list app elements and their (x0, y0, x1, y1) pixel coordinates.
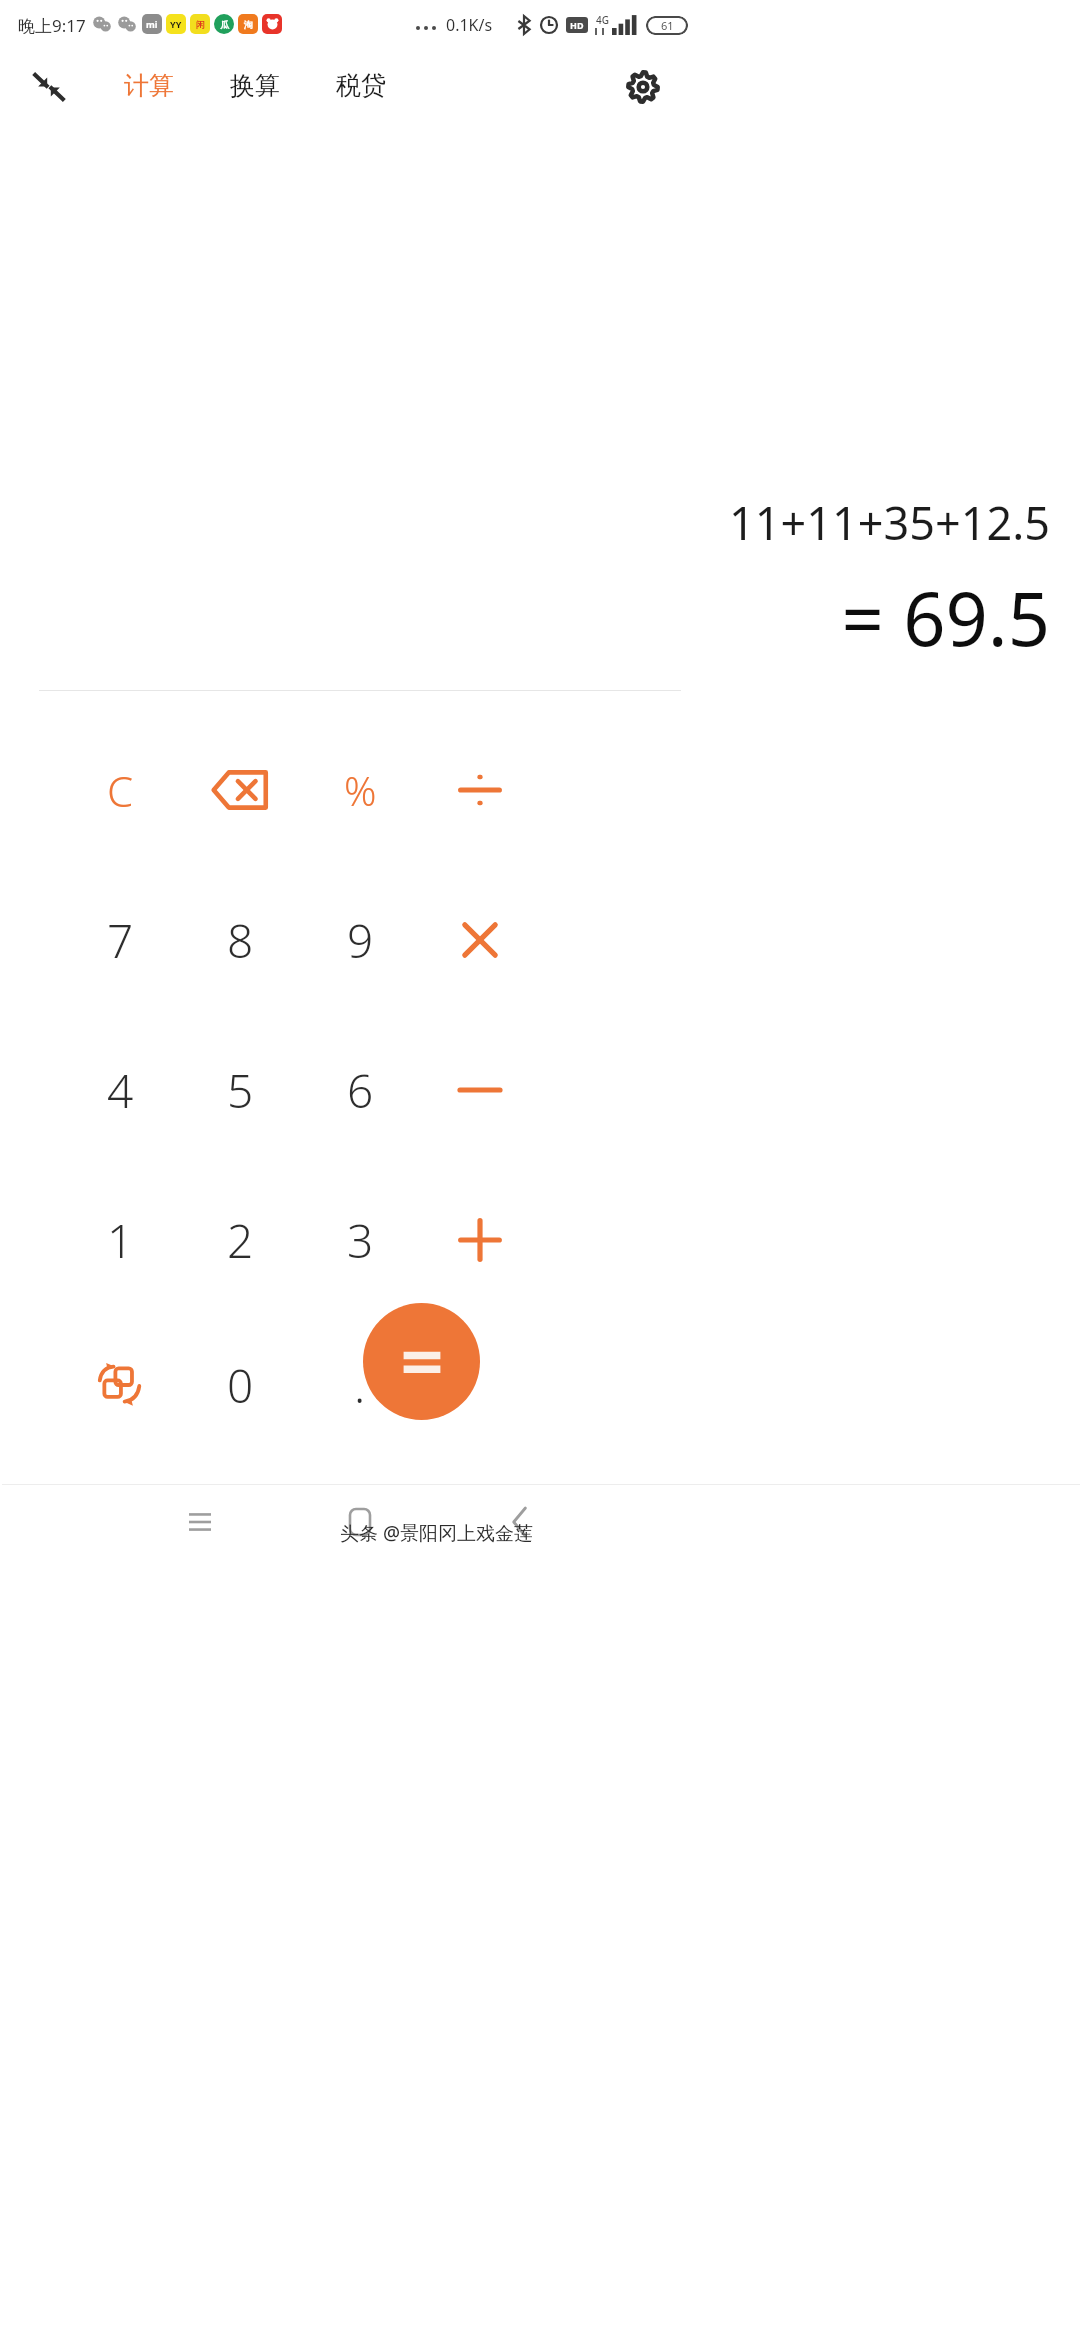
button[interactable]: 7 (60, 865, 180, 1015)
button[interactable]: Recents (170, 1492, 230, 1552)
staticText: 6 (347, 1059, 374, 1122)
button[interactable]: Home (330, 1492, 390, 1552)
staticText: 3 (347, 1209, 374, 1272)
staticText: 税贷 (336, 70, 386, 101)
button[interactable]: Unit convert (60, 1310, 180, 1460)
button[interactable]: 8 (180, 865, 300, 1015)
staticText: 9 (347, 909, 374, 972)
button[interactable]: 6 (300, 1015, 420, 1165)
staticText: 61 (661, 18, 674, 33)
button[interactable]: % (300, 715, 420, 865)
button[interactable]: Back (490, 1492, 550, 1552)
button[interactable]: Divide (420, 715, 540, 865)
staticText: = 69.5 (841, 567, 1050, 668)
button[interactable]: Multiply (420, 865, 540, 1015)
staticText: 计算 (124, 70, 174, 101)
staticText: 闲 (196, 19, 205, 30)
button[interactable]: 2 (180, 1165, 300, 1315)
button[interactable]: Settings (616, 60, 670, 114)
staticText: 头条 @景阳冈上戏金莲 (340, 1520, 534, 1546)
button[interactable]: Collapse (22, 60, 76, 114)
button[interactable]: 计算 (118, 50, 180, 120)
staticText: 换算 (230, 70, 280, 101)
staticText: 11+11+35+12.5 (729, 492, 1050, 553)
staticText: 4 (107, 1059, 134, 1122)
staticText: % (344, 763, 377, 817)
button[interactable]: Backspace (180, 715, 300, 865)
button[interactable]: Equals (363, 1303, 480, 1420)
staticText: 0 (227, 1354, 254, 1417)
staticText: C (107, 762, 134, 819)
staticText: 8 (227, 909, 254, 972)
button[interactable]: 4 (60, 1015, 180, 1165)
button[interactable]: C (60, 715, 180, 865)
button[interactable]: Minus (420, 1015, 540, 1165)
staticText: 5 (227, 1059, 254, 1122)
button[interactable]: 9 (300, 865, 420, 1015)
button[interactable]: 5 (180, 1015, 300, 1165)
staticText: 晚上9:17 (18, 14, 86, 37)
staticText: 0.1K/s (446, 14, 493, 36)
staticText: 1 (107, 1209, 134, 1272)
staticText: 7 (107, 909, 134, 972)
button[interactable]: . (300, 1310, 420, 1460)
staticText: YY (170, 18, 182, 30)
staticText: HD (570, 19, 584, 31)
button[interactable]: 换算 (224, 50, 286, 120)
staticText: 4G (596, 13, 609, 27)
button[interactable]: 3 (300, 1165, 420, 1315)
button[interactable]: Plus (420, 1165, 540, 1315)
button[interactable]: 税贷 (330, 50, 392, 120)
button[interactable]: 1 (60, 1165, 180, 1315)
staticText: . (354, 1354, 366, 1417)
staticText: mi (146, 18, 158, 30)
staticText: 瓜 (220, 19, 229, 30)
staticText: 淘 (244, 19, 253, 30)
staticText: 2 (227, 1209, 254, 1272)
button[interactable]: 0 (180, 1310, 300, 1460)
